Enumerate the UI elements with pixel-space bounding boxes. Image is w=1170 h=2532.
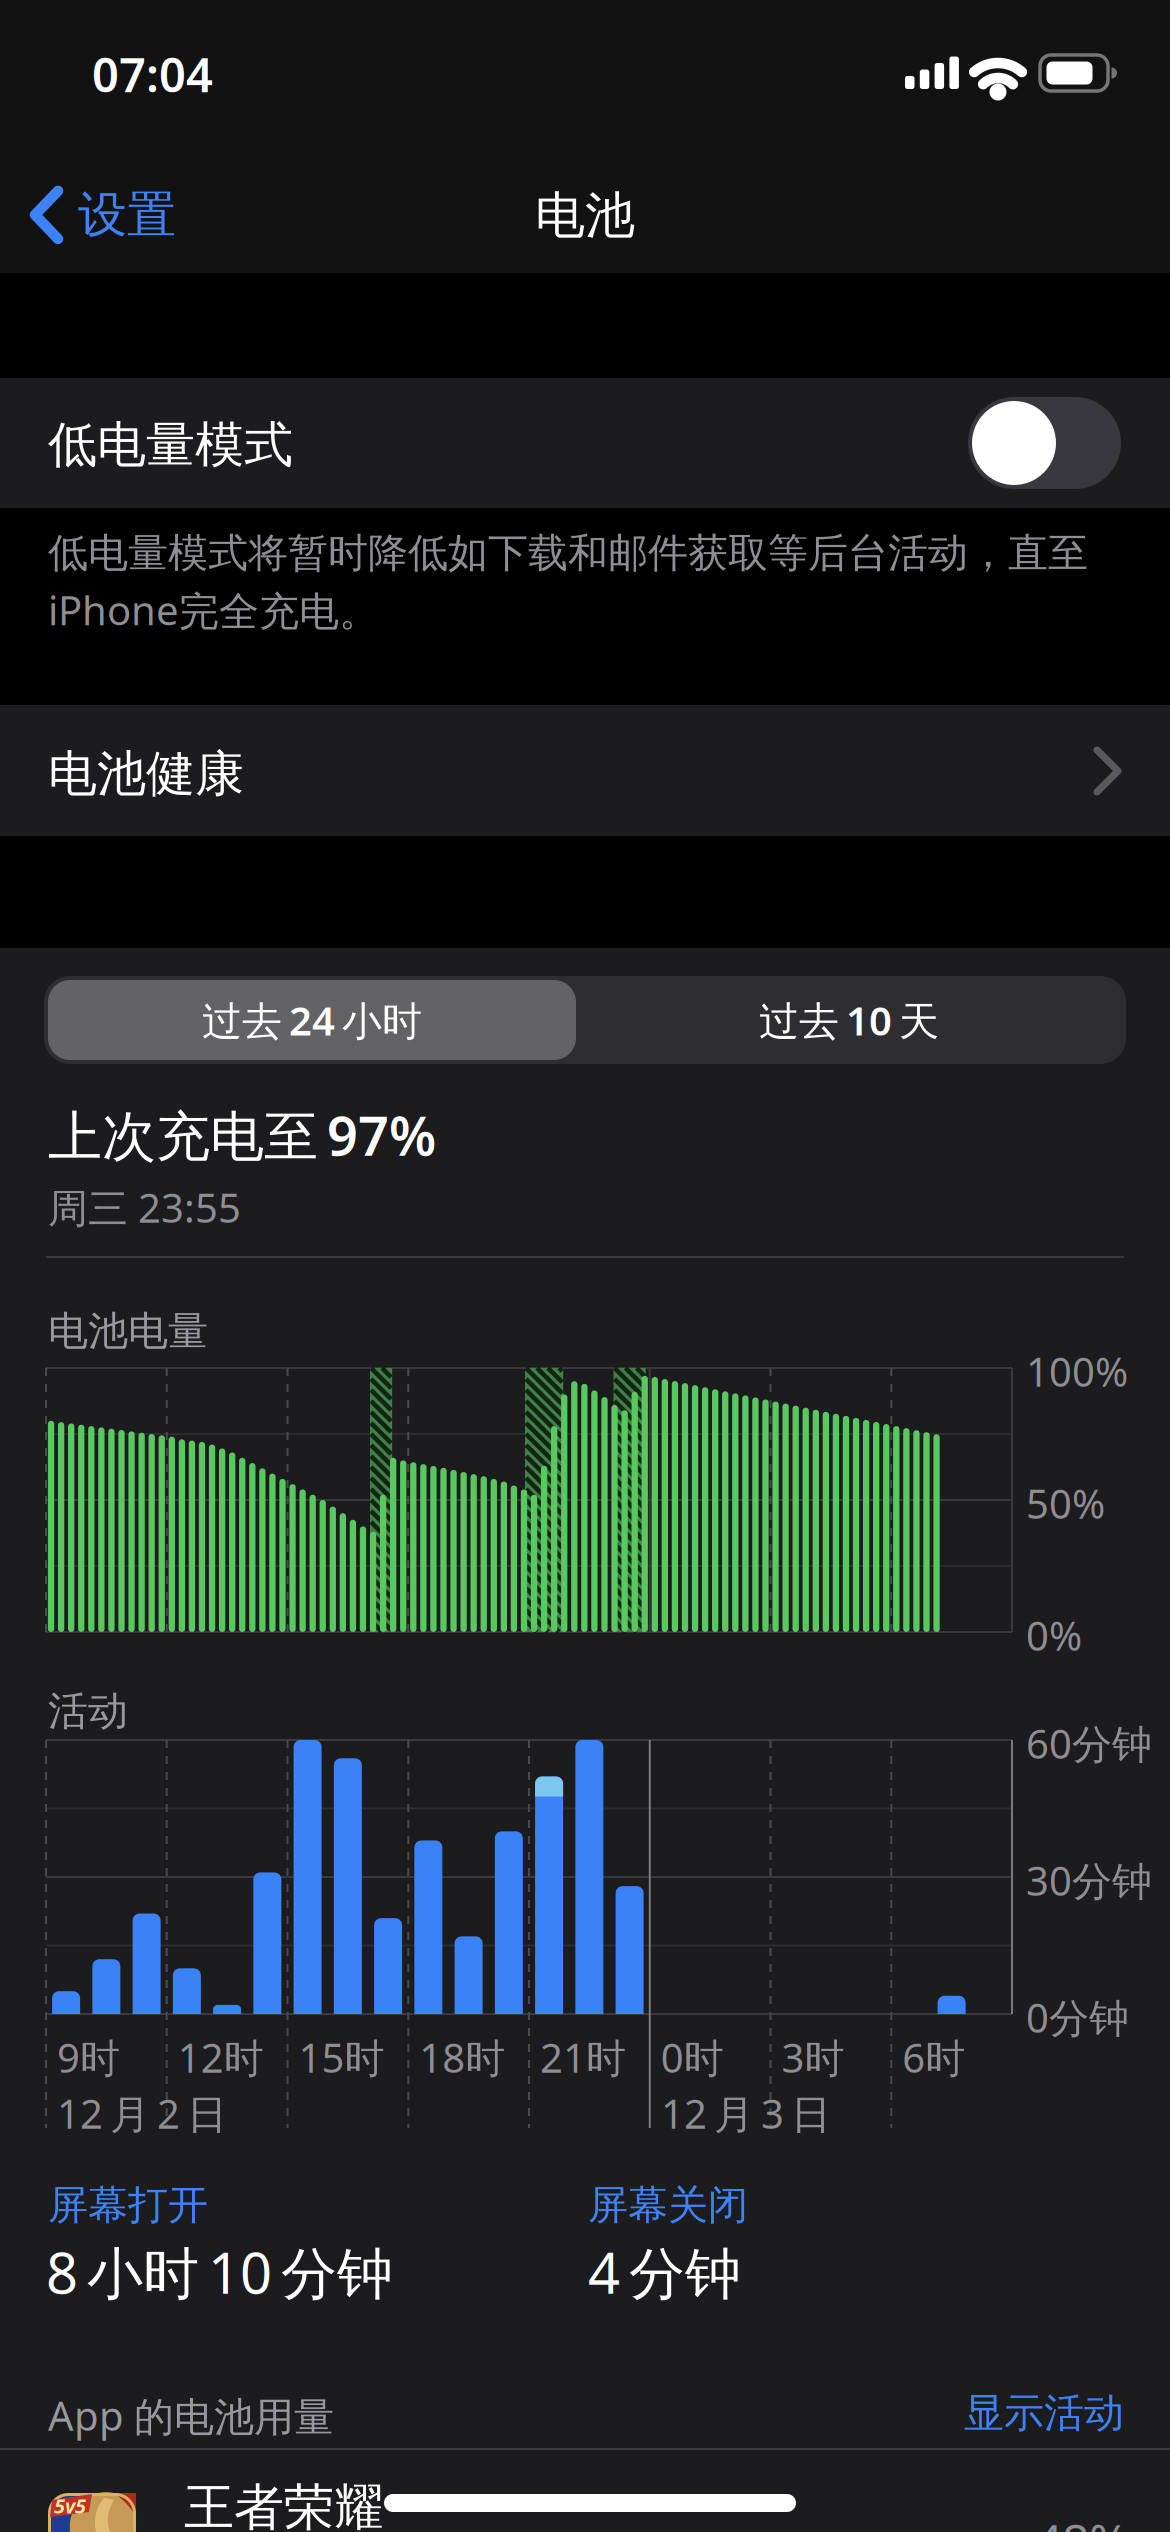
staticText: 0% bbox=[1026, 1608, 1082, 1662]
button[interactable]: 设置 bbox=[0, 0, 176, 246]
staticText: iPhone完全充电。 bbox=[48, 582, 379, 637]
staticText: 过去 24 小时 bbox=[202, 993, 422, 1047]
staticText: 低电量模式将暂时降低如下载和邮件获取等后台活动，直至 bbox=[48, 528, 1088, 578]
staticText: 9时 bbox=[57, 2030, 120, 2084]
staticText: 12时 bbox=[178, 2030, 264, 2084]
staticText: 屏幕打开 bbox=[48, 2180, 208, 2230]
staticText: 12 月 2 日 bbox=[57, 2086, 227, 2140]
staticText: 48% bbox=[1035, 2508, 1129, 2532]
staticText: 18时 bbox=[419, 2030, 505, 2084]
staticText: 6时 bbox=[902, 2030, 965, 2084]
staticText: 周三 23:55 bbox=[48, 1180, 241, 1234]
staticText: 5v5 bbox=[54, 2492, 86, 2519]
staticText: 显示活动 bbox=[964, 2388, 1124, 2438]
staticText: 低电量模式 bbox=[48, 414, 293, 476]
staticText: 4 分钟 bbox=[588, 2234, 741, 2310]
staticText: 电池健康 bbox=[48, 743, 244, 805]
staticText: 50% bbox=[1026, 1476, 1105, 1530]
staticText: 设置 bbox=[78, 184, 176, 246]
staticText: 07:04 bbox=[92, 42, 213, 106]
staticText: 过去 10 天 bbox=[759, 993, 939, 1047]
button[interactable]: 显示活动 bbox=[0, 0, 1124, 2438]
staticText: 21时 bbox=[540, 2030, 626, 2084]
staticText: 上次充电至 97% bbox=[48, 1098, 436, 1171]
staticText: 8 小时 10 分钟 bbox=[46, 2234, 393, 2310]
staticText: 屏幕关闭 bbox=[588, 2180, 748, 2230]
staticText: 0时 bbox=[661, 2030, 724, 2084]
staticText: 电池电量 bbox=[48, 1306, 208, 1356]
button[interactable]: 过去 10 天 bbox=[0, 0, 1122, 1060]
staticText: App 的电池用量 bbox=[48, 2388, 334, 2443]
staticText: 100% bbox=[1026, 1344, 1128, 1398]
button[interactable]: 低电量模式 bbox=[0, 378, 1170, 508]
button[interactable]: 过去 24 小时 bbox=[0, 0, 576, 1060]
staticText: 电池 bbox=[535, 184, 635, 247]
staticText: 0分钟 bbox=[1026, 1990, 1129, 2044]
button[interactable]: 电池健康 bbox=[0, 705, 1170, 836]
staticText: 30分钟 bbox=[1026, 1853, 1152, 1907]
button[interactable]: 5v5 bbox=[0, 0, 1170, 2532]
staticText: 12 月 3 日 bbox=[661, 2086, 831, 2140]
staticText: 王者荣耀 bbox=[184, 2476, 384, 2532]
staticText: 活动 bbox=[48, 1686, 128, 1736]
staticText: 3时 bbox=[781, 2030, 844, 2084]
staticText: 15时 bbox=[298, 2030, 384, 2084]
staticText: 60分钟 bbox=[1026, 1716, 1152, 1770]
